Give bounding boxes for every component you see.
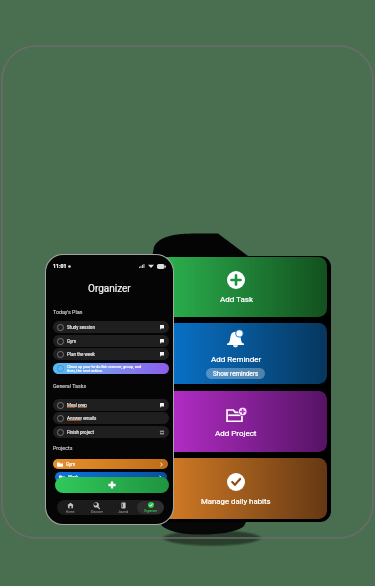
staticText: Organizer — [144, 509, 158, 513]
staticText: Add Reminder — [211, 355, 262, 364]
staticText: Home — [66, 510, 75, 514]
button[interactable]: Show reminders — [206, 368, 265, 379]
button[interactable]: Discover — [83, 502, 110, 514]
staticText: Answer emails — [67, 416, 97, 421]
staticText: Gym — [66, 462, 76, 467]
button[interactable]: Clean up your to-do list: remove, group,… — [53, 363, 169, 374]
button[interactable]: Add Reminder — [145, 323, 327, 384]
button[interactable]: Add new item — [55, 477, 169, 493]
staticText: 11:01 — [53, 263, 67, 269]
staticText: Organizer — [88, 283, 131, 295]
button[interactable]: Add Task — [145, 257, 327, 317]
staticText: Study session — [67, 325, 95, 330]
button[interactable]: Answer emails — [53, 412, 169, 424]
button[interactable]: Add Project — [145, 391, 327, 452]
button[interactable]: Gym — [53, 459, 168, 469]
staticText: Add Project — [215, 429, 257, 438]
staticText: Gym — [67, 339, 77, 344]
staticText: Projects — [53, 445, 73, 451]
button[interactable]: Work — [55, 472, 167, 482]
button[interactable]: Home — [57, 502, 83, 514]
staticText: General Tasks — [53, 383, 87, 389]
staticText: Today's Plan — [53, 309, 83, 315]
button[interactable]: Manage daily habits — [145, 458, 327, 519]
staticText: Manage daily habits — [201, 497, 271, 506]
staticText: Meal prep — [67, 403, 87, 408]
button[interactable]: Gym — [53, 335, 169, 347]
button[interactable]: Plan the week — [53, 348, 169, 360]
button[interactable]: Finish project — [53, 426, 169, 438]
staticText: Finish project — [67, 430, 94, 435]
button[interactable]: Journal — [110, 502, 137, 514]
staticText: Clean up your to-do list: remove, group,… — [67, 364, 148, 373]
staticText: Journal — [118, 510, 129, 514]
staticText: Show reminders — [213, 370, 259, 377]
staticText: Discover — [91, 510, 103, 514]
staticText: Plan the week — [67, 352, 95, 357]
button[interactable]: Organizer — [137, 501, 164, 514]
button[interactable]: Meal prep — [53, 399, 169, 411]
staticText: Add Task — [220, 295, 253, 304]
staticText: Work — [68, 475, 79, 480]
button[interactable]: Study session — [53, 321, 169, 333]
